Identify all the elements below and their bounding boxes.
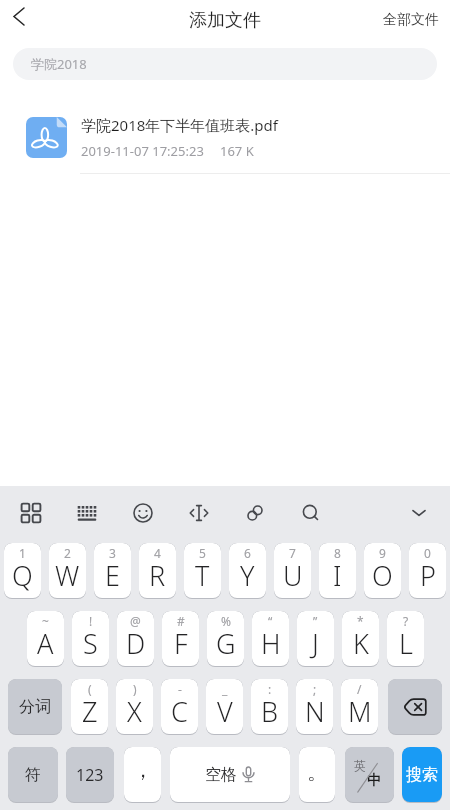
button[interactable]: 空格 <box>170 747 290 803</box>
staticText: 9 <box>379 545 386 561</box>
staticText: - <box>178 681 182 697</box>
button[interactable]: _ <box>206 679 243 735</box>
button[interactable]: ; <box>296 679 333 735</box>
staticText: 2019-11-07 17:25:23 <box>81 142 204 160</box>
staticText: 8 <box>334 545 341 561</box>
button[interactable] <box>245 503 265 523</box>
button[interactable] <box>388 679 442 735</box>
staticText: ! <box>89 613 93 629</box>
button[interactable]: % <box>207 611 244 667</box>
button[interactable]: 。 <box>299 747 335 803</box>
staticText: M <box>348 693 372 730</box>
button[interactable]: ? <box>387 611 424 667</box>
staticText: 搜索 <box>406 765 438 785</box>
button[interactable]: 符 <box>8 747 58 803</box>
staticText: I <box>333 557 342 594</box>
button[interactable]: - <box>161 679 198 735</box>
button[interactable]: 8 <box>319 543 356 599</box>
button[interactable]: 9 <box>364 543 401 599</box>
button[interactable]: ( <box>71 679 108 735</box>
staticText: D <box>126 625 146 662</box>
button[interactable]: 4 <box>139 543 176 599</box>
button[interactable]: 学院2018 <box>13 48 437 80</box>
staticText: F <box>174 625 188 662</box>
staticText: B <box>261 693 279 730</box>
staticText: Q <box>12 557 33 594</box>
staticText: O <box>372 557 393 594</box>
staticText: 2 <box>64 545 71 561</box>
staticText: H <box>261 625 281 662</box>
staticText: 5 <box>199 545 206 561</box>
button[interactable] <box>77 503 97 523</box>
staticText: ， <box>133 758 153 783</box>
button[interactable]: 学院2018年下半年值班表.pdf <box>0 115 450 174</box>
button[interactable]: 全部文件 <box>383 11 439 29</box>
button[interactable] <box>301 503 321 523</box>
staticText: 空格 <box>205 765 237 785</box>
staticText: “ <box>268 613 273 629</box>
staticText: W <box>55 557 80 594</box>
staticText: 3 <box>109 545 116 561</box>
staticText: A <box>37 625 54 662</box>
staticText: 中 <box>367 772 381 790</box>
staticText: 6 <box>244 545 251 561</box>
staticText: ? <box>403 613 409 629</box>
staticText: 167 K <box>220 142 254 160</box>
button[interactable]: ! <box>72 611 109 667</box>
button[interactable]: ” <box>297 611 334 667</box>
staticText: T <box>195 557 210 594</box>
staticText: 学院2018年下半年值班表.pdf <box>81 115 278 135</box>
button[interactable]: 分词 <box>8 679 62 735</box>
staticText: ~ <box>42 613 49 629</box>
button[interactable]: 6 <box>229 543 266 599</box>
button[interactable]: 3 <box>94 543 131 599</box>
button[interactable]: ， <box>124 747 161 803</box>
button[interactable] <box>189 503 209 523</box>
button[interactable]: 5 <box>184 543 221 599</box>
staticText: 添加文件 <box>189 9 261 32</box>
button[interactable]: ) <box>116 679 153 735</box>
staticText: S <box>83 625 98 662</box>
button[interactable]: 搜索 <box>402 747 442 803</box>
button[interactable] <box>409 503 429 523</box>
staticText: ” <box>313 613 318 629</box>
button[interactable]: 123 <box>66 747 114 803</box>
staticText: ; <box>313 681 317 697</box>
staticText: ( <box>88 681 92 697</box>
button[interactable] <box>7 4 31 28</box>
staticText: % <box>221 613 231 629</box>
button[interactable] <box>21 503 41 523</box>
staticText: @ <box>130 613 141 629</box>
staticText: 符 <box>25 765 41 785</box>
staticText: Z <box>82 693 98 730</box>
button[interactable]: 2 <box>49 543 86 599</box>
staticText: L <box>399 625 413 662</box>
button[interactable]: 0 <box>409 543 446 599</box>
button[interactable]: * <box>342 611 379 667</box>
staticText: 分词 <box>19 697 51 717</box>
staticText: / <box>357 681 362 697</box>
staticText: R <box>149 557 166 594</box>
staticText: G <box>216 625 236 662</box>
button[interactable]: ~ <box>27 611 64 667</box>
staticText: _ <box>222 681 228 697</box>
staticText: 7 <box>289 545 296 561</box>
button[interactable]: # <box>162 611 199 667</box>
button[interactable] <box>133 503 153 523</box>
staticText: 1 <box>19 545 26 561</box>
staticText: Y <box>240 557 255 594</box>
staticText: X <box>127 693 142 730</box>
button[interactable]: / <box>341 679 378 735</box>
staticText: 英 <box>354 758 366 773</box>
staticText: * <box>357 613 364 629</box>
button[interactable]: 1 <box>4 543 41 599</box>
button[interactable]: 英 <box>345 747 394 803</box>
staticText: 0 <box>424 545 431 561</box>
button[interactable]: @ <box>117 611 154 667</box>
button[interactable]: “ <box>252 611 289 667</box>
staticText: E <box>105 557 120 594</box>
button[interactable]: : <box>251 679 288 735</box>
button[interactable]: 7 <box>274 543 311 599</box>
staticText: P <box>420 557 436 594</box>
staticText: K <box>353 625 369 662</box>
